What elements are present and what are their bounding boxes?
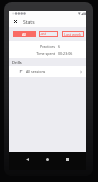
button[interactable]: Back	[21, 153, 33, 165]
button[interactable]: Recents	[61, 153, 73, 165]
staticText: Practices	[9, 44, 55, 49]
staticText: Last week	[64, 32, 82, 37]
button[interactable]: Close	[11, 17, 20, 26]
button[interactable]: Last month	[39, 31, 58, 37]
button[interactable]: All	[13, 31, 36, 37]
button[interactable]: Home	[41, 153, 53, 165]
staticText: Time spent	[9, 51, 55, 56]
staticText: Stats	[23, 19, 35, 26]
staticText: 00:23:06	[58, 51, 73, 56]
button[interactable]: All sessions	[9, 66, 86, 77]
staticText: All	[22, 32, 27, 37]
staticText: 6	[58, 44, 61, 49]
staticText: Drills	[12, 60, 22, 65]
staticText: All sessions	[26, 69, 46, 74]
button[interactable]: Last week	[62, 31, 84, 37]
staticText: Last month	[39, 31, 58, 37]
